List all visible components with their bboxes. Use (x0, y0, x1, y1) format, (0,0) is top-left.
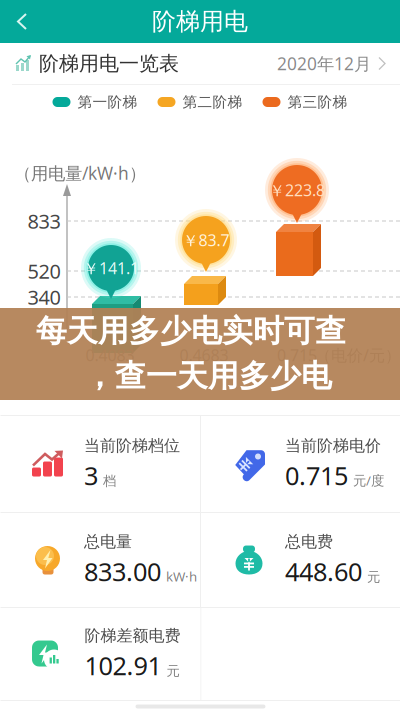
staticText: 第一阶梯 (77, 93, 137, 111)
staticText: 0.4083 (85, 344, 134, 366)
staticText: 元 (367, 569, 380, 585)
staticText: 102.91 (84, 648, 161, 682)
staticText: （用电量/kW·h） (14, 161, 146, 184)
staticText: 当前阶梯电价 (285, 436, 381, 456)
button[interactable]: 阶梯差额电费 (0, 608, 200, 700)
staticText: 833.00 (84, 554, 161, 588)
button[interactable]: Back (0, 0, 44, 43)
button[interactable]: 阶梯用电一览表 (0, 43, 400, 84)
staticText: 340 (27, 284, 60, 310)
staticText: 448.60 (285, 554, 362, 588)
staticText: 阶梯用电 (152, 7, 248, 36)
staticText: 0.715 (285, 458, 348, 492)
staticText: 阶梯用电一览表 (39, 51, 179, 76)
staticText: 3 (84, 458, 98, 492)
staticText: ￥223.8 (269, 179, 325, 201)
staticText: kW·h (166, 567, 197, 585)
staticText: 档 (103, 473, 116, 489)
staticText: 520 (27, 258, 60, 284)
staticText: 元 (166, 663, 179, 679)
button[interactable]: 当前阶梯档位 (0, 416, 200, 512)
staticText: 总电量 (84, 532, 132, 552)
staticText: ，查一天用多少电 (84, 357, 332, 395)
staticText: 当前阶梯档位 (84, 436, 180, 456)
staticText: 2020年12月 (277, 52, 371, 75)
button[interactable]: 当前阶梯电价 (201, 416, 400, 512)
staticText: 第二阶梯 (182, 93, 242, 111)
button[interactable]: 总电量 (0, 513, 200, 607)
staticText: ￥83.7 (182, 229, 229, 251)
staticText: 总电费 (285, 532, 333, 552)
staticText: ￥141.1 (83, 257, 139, 279)
staticText: 0.4683 (179, 344, 228, 366)
staticText: 0.715 (277, 344, 317, 366)
staticText: 833 (27, 208, 60, 234)
staticText: 每天用多少电实时可查 (36, 312, 346, 350)
button[interactable]: 总电费 (201, 513, 400, 607)
staticText: 第三阶梯 (287, 93, 347, 111)
staticText: 元/度 (353, 471, 384, 489)
staticText: 阶梯差额电费 (84, 626, 180, 646)
staticText: （电价/元） (315, 344, 400, 366)
